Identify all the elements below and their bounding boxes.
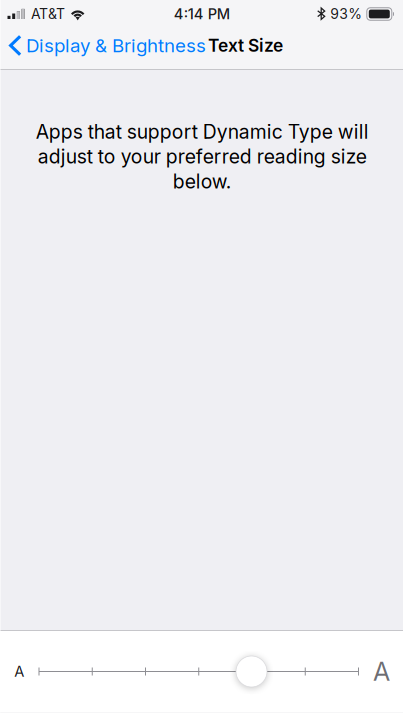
staticText: A xyxy=(373,656,390,687)
staticText: AT&T xyxy=(31,5,65,22)
button[interactable]: Display & Brightness xyxy=(0,33,206,64)
staticText: 93% xyxy=(330,5,362,22)
staticText: Apps that support Dynamic Type will adju… xyxy=(35,120,368,193)
staticText: 4:14 PM xyxy=(174,5,230,23)
staticText: Text Size xyxy=(208,35,283,56)
staticText: A xyxy=(14,663,24,680)
staticText: Display & Brightness xyxy=(26,34,206,57)
